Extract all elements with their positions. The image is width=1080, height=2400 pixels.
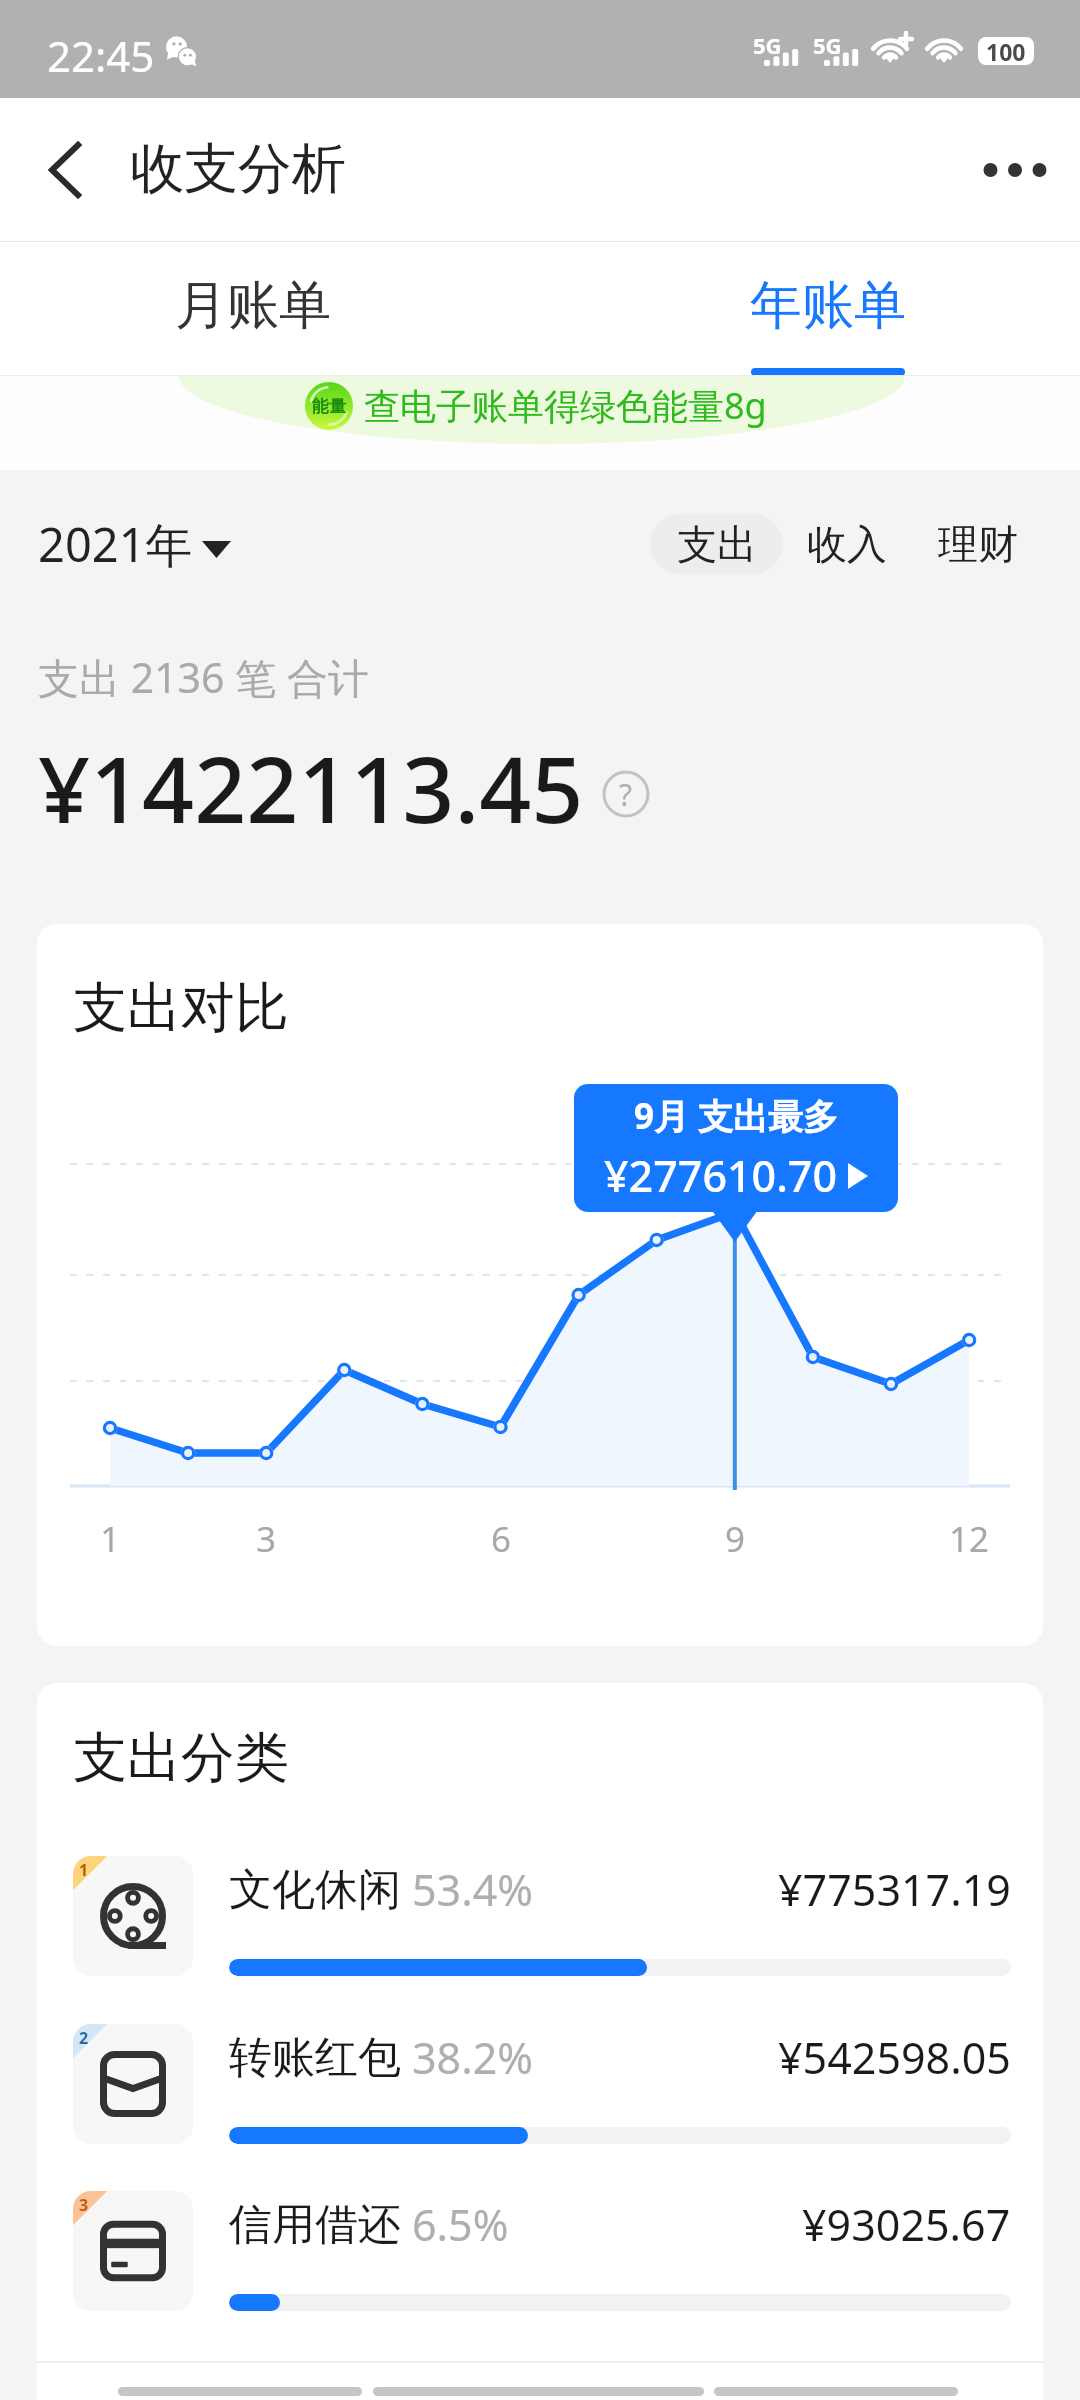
staticText: 支出对比 <box>73 974 289 1042</box>
button[interactable]: 能量 <box>305 381 771 430</box>
staticText: ? <box>619 774 633 815</box>
staticText: 5G <box>813 30 842 60</box>
staticText: 5G <box>753 30 782 60</box>
staticText: 支出分类 <box>73 1724 289 1792</box>
staticText: ¥775317.19 <box>778 1860 1011 1919</box>
button[interactable]: 支出 <box>650 514 783 574</box>
staticText: 1 <box>70 1515 150 1563</box>
button[interactable]: 年账单 <box>678 242 978 376</box>
staticText: 9月 支出最多 <box>634 1092 839 1140</box>
staticText: 38.2% <box>412 2028 534 2087</box>
staticText: 支出 2136 笔 合计 <box>38 649 369 705</box>
staticText: 12 <box>929 1515 1009 1563</box>
staticText: 2 <box>79 2027 89 2049</box>
button[interactable]: 收入 <box>783 514 911 574</box>
staticText: 理财 <box>938 519 1018 569</box>
button[interactable]: 2 <box>37 2024 1043 2144</box>
button[interactable]: 2021年 <box>38 512 231 576</box>
staticText: 53.4% <box>412 1860 534 1919</box>
staticText: 3 <box>226 1515 306 1563</box>
button[interactable]: More options <box>950 98 1080 242</box>
button[interactable]: September detail <box>574 1084 898 1212</box>
staticText: ¥1422113.45 <box>38 726 584 850</box>
staticText: 9 <box>695 1515 775 1563</box>
button[interactable]: Help <box>602 770 650 818</box>
button[interactable]: Back <box>0 98 120 242</box>
staticText: 文化休闲 <box>229 1863 401 1917</box>
staticText: 6.5% <box>412 2195 509 2254</box>
button[interactable]: 1 <box>37 1856 1043 1976</box>
button[interactable]: 月账单 <box>103 242 403 376</box>
staticText: 转账红包 <box>229 2031 401 2085</box>
staticText: 月账单 <box>175 273 331 339</box>
staticText: 3 <box>79 2194 89 2216</box>
staticText: 收支分析 <box>130 135 346 203</box>
staticText: ¥277610.70 <box>604 1146 838 1205</box>
staticText: ¥93025.67 <box>802 2195 1011 2254</box>
staticText: 年账单 <box>750 273 906 339</box>
staticText: 能量 <box>312 396 346 417</box>
staticText: 22:45 <box>47 27 155 84</box>
staticText: 信用借还 <box>229 2198 401 2252</box>
button[interactable]: 3 <box>37 2191 1043 2311</box>
staticText: 支出 <box>677 519 757 569</box>
button[interactable]: 理财 <box>911 514 1044 574</box>
staticText: 100 <box>986 37 1026 64</box>
staticText: ¥542598.05 <box>778 2028 1011 2087</box>
staticText: 收入 <box>807 519 887 569</box>
staticText: 6 <box>461 1515 541 1563</box>
staticText: 2021年 <box>38 512 193 576</box>
staticText: 查电子账单得绿色能量8g <box>364 381 767 430</box>
staticText: 1 <box>79 1859 89 1881</box>
